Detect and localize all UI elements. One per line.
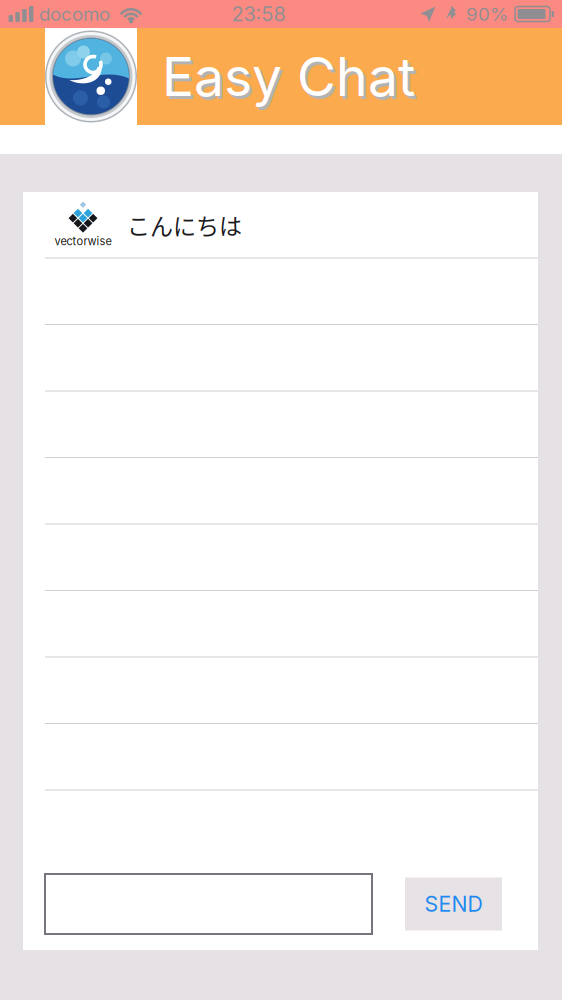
staticText: 90% — [466, 3, 508, 25]
button[interactable] — [45, 874, 372, 934]
button[interactable]: SEND — [405, 877, 502, 930]
staticText: こんにちは — [127, 208, 242, 241]
staticText: 23:58 — [231, 2, 285, 26]
staticText: docomo — [39, 3, 110, 25]
staticText: SEND — [424, 891, 482, 917]
staticText: vectorwise — [54, 235, 111, 248]
staticText: Easy Chat — [162, 44, 415, 109]
staticText: Easy Chat — [164, 47, 417, 112]
